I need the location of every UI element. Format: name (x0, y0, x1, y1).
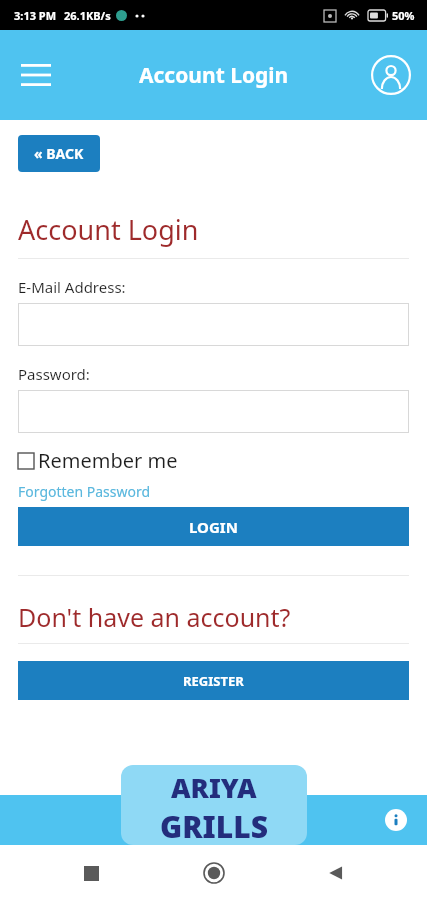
button[interactable]: Information (379, 803, 413, 837)
staticText: 3:13 PM (14, 8, 57, 23)
staticText: Account Login (139, 61, 289, 90)
staticText: LOGIN (189, 517, 238, 537)
button[interactable]: Account (365, 49, 417, 101)
staticText: 26.1KB/s (64, 8, 111, 23)
button[interactable]: REGISTER (18, 661, 409, 700)
staticText: 50% (392, 8, 415, 23)
button[interactable]: « BACK (18, 135, 100, 172)
button[interactable]: Open navigation menu (10, 49, 62, 101)
button[interactable] (18, 303, 409, 346)
button[interactable]: Remember me (18, 447, 178, 474)
staticText: Don't have an account? (18, 600, 291, 634)
staticText: Account Login (18, 211, 199, 248)
staticText: ARIYA (171, 769, 257, 806)
staticText: « BACK (34, 144, 84, 163)
button[interactable]: Recent apps (70, 852, 112, 894)
staticText: Password: (18, 364, 90, 384)
staticText: GRILLS (160, 806, 268, 845)
staticText: Remember me (38, 447, 178, 474)
staticText: REGISTER (183, 672, 244, 690)
button[interactable] (18, 390, 409, 433)
button[interactable]: Back (315, 852, 357, 894)
staticText: E-Mail Address: (18, 277, 126, 297)
button[interactable]: LOGIN (18, 507, 409, 546)
button[interactable]: Ariya Grills logo (121, 765, 307, 845)
button[interactable]: Home (193, 852, 235, 894)
button[interactable]: Forgotten Password (18, 482, 151, 501)
